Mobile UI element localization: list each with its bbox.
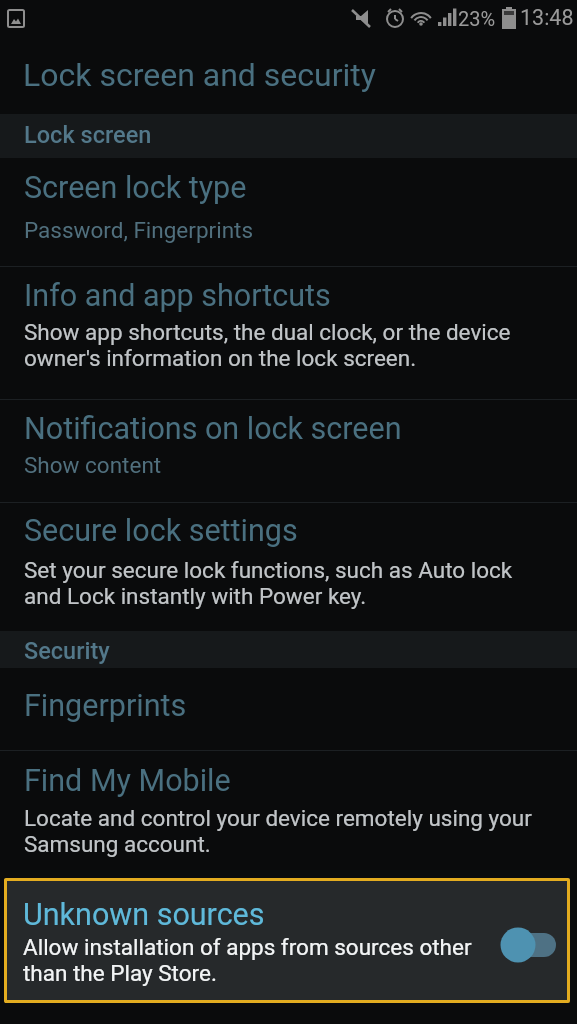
staticText: Unknown sources: [23, 897, 265, 933]
staticText: 23%: [458, 7, 496, 30]
staticText: Allow installation of apps from sources …: [23, 934, 472, 987]
staticText: Notifications on lock screen: [24, 411, 402, 447]
staticText: Locate and control your device remotely …: [24, 805, 532, 858]
staticText: Lock screen: [24, 121, 152, 149]
staticText: Find My Mobile: [24, 763, 231, 799]
button[interactable]: Unknown sources: [4, 878, 570, 1003]
staticText: Show app shortcuts, the dual clock, or t…: [24, 319, 511, 372]
staticText: Show content: [24, 452, 162, 478]
staticText: Lock screen and security: [23, 56, 376, 94]
staticText: Secure lock settings: [24, 513, 298, 549]
button[interactable]: Fingerprints: [0, 668, 577, 750]
button[interactable]: Secure lock settings: [0, 503, 577, 631]
button[interactable]: Screen lock type: [0, 158, 577, 266]
staticText: Screen lock type: [24, 170, 247, 206]
staticText: Set your secure lock functions, such as …: [24, 557, 513, 610]
staticText: Password, Fingerprints: [24, 217, 254, 243]
staticText: Security: [24, 637, 110, 665]
button[interactable]: Find My Mobile: [0, 751, 577, 875]
staticText: 13:48: [520, 5, 574, 30]
staticText: Info and app shortcuts: [24, 278, 331, 314]
staticText: Fingerprints: [24, 688, 187, 724]
button[interactable]: Notifications on lock screen: [0, 400, 577, 502]
button[interactable]: Info and app shortcuts: [0, 267, 577, 399]
